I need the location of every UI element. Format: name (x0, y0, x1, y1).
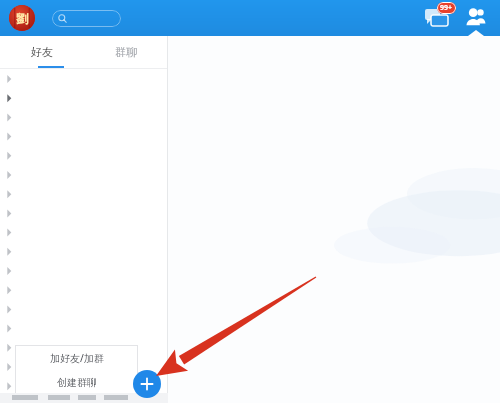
button[interactable]: Messages (424, 4, 454, 32)
button[interactable]: Contacts (462, 4, 490, 32)
staticText: 创建群聊 (57, 376, 97, 389)
staticText: 劉 (16, 11, 28, 26)
button[interactable]: 创建群聊 (15, 370, 138, 395)
staticText: 群聊 (115, 45, 137, 59)
staticText: 99+ (440, 3, 453, 13)
staticText: 好友 (31, 45, 53, 59)
staticText: 加好友/加群 (50, 351, 104, 365)
button[interactable]: 好友 (0, 36, 84, 68)
button[interactable]: Profile avatar (9, 5, 35, 31)
button[interactable]: Search (52, 10, 121, 27)
button[interactable]: 群聊 (84, 36, 168, 68)
button[interactable]: Add friend or group (133, 370, 161, 398)
button[interactable]: 加好友/加群 (15, 345, 138, 370)
